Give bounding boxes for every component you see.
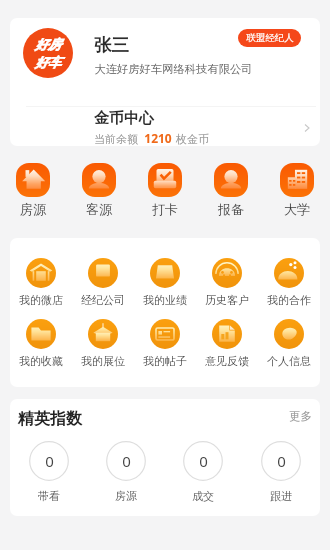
staticText: 成交 [192, 489, 214, 503]
button[interactable]: 我的合作 [258, 258, 320, 307]
staticText: 我的展位 [81, 354, 125, 368]
button[interactable]: 大学 [264, 163, 330, 217]
staticText: 历史客户 [205, 293, 249, 307]
staticText: 大连好房好车网络科技有限公司 [94, 62, 253, 76]
staticText: 报备 [218, 201, 244, 217]
staticText: 0 [122, 451, 131, 471]
button[interactable]: 客源 [66, 163, 132, 217]
staticText: 0 [45, 451, 54, 471]
button[interactable]: 更多 [286, 406, 315, 426]
staticText: 我的微店 [19, 293, 63, 307]
staticText: 意见反馈 [205, 354, 249, 368]
button[interactable]: 我的收藏 [10, 319, 72, 368]
staticText: 0 [277, 451, 286, 471]
button[interactable]: 报备 [198, 163, 264, 217]
staticText: 打卡 [152, 201, 178, 217]
staticText: 张三 [94, 34, 129, 56]
button[interactable]: 经纪公司 [72, 258, 134, 307]
button[interactable]: 0 [10, 441, 87, 503]
staticText: 好房 [35, 36, 61, 52]
staticText: 个人信息 [267, 354, 311, 368]
button[interactable]: 0 [87, 441, 164, 503]
staticText: 我的业绩 [143, 293, 187, 307]
staticText: 0 [199, 451, 208, 471]
staticText: 1210 [144, 130, 172, 146]
staticText: 精英指数 [18, 409, 82, 429]
staticText: 房源 [20, 201, 46, 217]
staticText: 大学 [284, 201, 310, 217]
staticText: 好车 [35, 54, 61, 70]
staticText: 经纪公司 [81, 293, 125, 307]
staticText: 跟进 [270, 489, 292, 503]
staticText: 金币中心 [94, 109, 154, 128]
button[interactable]: 意见反馈 [196, 319, 258, 368]
button[interactable]: 我的帖子 [134, 319, 196, 368]
staticText: 带看 [38, 489, 60, 503]
button[interactable]: 好房 [10, 18, 320, 106]
button[interactable]: 0 [242, 441, 320, 503]
button[interactable]: 我的展位 [72, 319, 134, 368]
staticText: 更多 [289, 409, 312, 423]
staticText: 我的帖子 [143, 354, 187, 368]
staticText: 我的收藏 [19, 354, 63, 368]
staticText: 房源 [115, 489, 137, 503]
button[interactable]: 金币中心 [10, 107, 320, 146]
button[interactable]: 打卡 [132, 163, 198, 217]
staticText: 枚金币 [176, 132, 209, 146]
button[interactable]: 0 [164, 441, 242, 503]
button[interactable]: 个人信息 [258, 319, 320, 368]
button[interactable]: 我的业绩 [134, 258, 196, 307]
button[interactable]: 房源 [0, 163, 66, 217]
staticText: 联盟经纪人 [246, 32, 294, 44]
button[interactable]: 我的微店 [10, 258, 72, 307]
button[interactable]: 联盟经纪人 [238, 29, 301, 47]
staticText: 我的合作 [267, 293, 311, 307]
button[interactable]: 历史客户 [196, 258, 258, 307]
staticText: 当前余额 [94, 132, 138, 146]
staticText: 客源 [86, 201, 112, 217]
